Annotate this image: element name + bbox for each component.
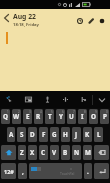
staticText: J [75,130,78,139]
button[interactable]: U [67,109,76,124]
staticText: A [9,130,14,139]
staticText: U [69,112,74,121]
button[interactable]: N [72,145,81,160]
button[interactable]: C [39,145,48,160]
staticText: E [26,112,30,121]
button[interactable]: Space [29,163,82,179]
button[interactable]: Voice input [38,91,56,108]
button[interactable]: M [83,145,92,160]
button[interactable]: E [23,109,32,124]
button[interactable]: H [61,127,70,142]
button[interactable]: V [50,145,59,160]
button[interactable]: Color [96,12,107,30]
button[interactable]: D [28,127,37,142]
staticText: V [52,148,57,157]
button[interactable]: Attach [85,12,96,30]
staticText: 4 [40,110,42,114]
button[interactable]: . [84,163,92,179]
button[interactable]: Settings [74,91,92,108]
staticText: 0 [106,110,108,114]
button[interactable]: Cursor [56,91,74,108]
staticText: C [41,148,46,157]
staticText: H [63,130,68,139]
button[interactable]: 12# [1,163,16,179]
staticText: S [20,130,24,139]
staticText: G [52,130,57,139]
button[interactable]: P [100,109,109,124]
button[interactable]: J [72,127,81,142]
staticText: 8 [84,110,86,114]
button[interactable]: T [45,109,54,124]
staticText: F [42,130,46,139]
button[interactable]: L [94,127,103,142]
button[interactable]: K [83,127,92,142]
staticText: M [85,148,91,157]
staticText: 18:18, Friday [13,22,40,28]
button[interactable]: S [17,127,26,142]
button[interactable]: Sticker [0,91,19,108]
button[interactable]: Back [0,9,13,27]
button[interactable]: Reminder [74,12,85,30]
staticText: 2 [18,110,20,114]
button[interactable]: G [50,127,59,142]
staticText: T [48,112,52,121]
staticText: X [30,148,35,157]
staticText: TouchPal [60,171,75,176]
staticText: Aug 22 [13,12,36,21]
staticText: W [13,112,20,121]
staticText: L [97,130,101,139]
button[interactable]: O [89,109,98,124]
button[interactable]: Hide keyboard [93,91,110,108]
staticText: . [87,167,89,176]
button[interactable]: I [78,109,87,124]
staticText: , [22,167,24,176]
staticText: 12# [4,168,14,175]
button[interactable]: A [7,127,15,142]
button[interactable]: B [61,145,70,160]
staticText: I [81,112,84,121]
button[interactable]: Q [1,109,10,124]
button[interactable]: W [12,109,21,124]
staticText: 9 [95,110,97,114]
staticText: B [63,148,68,157]
button[interactable]: Z [18,145,26,160]
staticText: O [91,112,96,121]
staticText: 7 [73,110,75,114]
button[interactable]: X [28,145,37,160]
staticText: 6 [62,110,64,114]
staticText: Q [3,112,8,121]
staticText: D [30,130,35,139]
button[interactable]: Enter [94,163,109,179]
staticText: P [103,112,107,121]
button[interactable]: Y [56,109,65,124]
staticText: N [74,148,80,157]
button[interactable]: Theme [19,91,38,108]
button[interactable]: Backspace [94,145,109,160]
button[interactable]: R [34,109,43,124]
button[interactable]: F [39,127,48,142]
staticText: Z [20,148,24,157]
staticText: Y [59,112,63,121]
staticText: R [36,112,41,121]
button[interactable]: Shift [1,145,16,160]
staticText: 5 [51,110,53,114]
staticText: 1 [7,110,9,114]
staticText: 3 [29,110,31,114]
staticText: K [85,130,90,139]
button[interactable]: , [18,163,27,179]
